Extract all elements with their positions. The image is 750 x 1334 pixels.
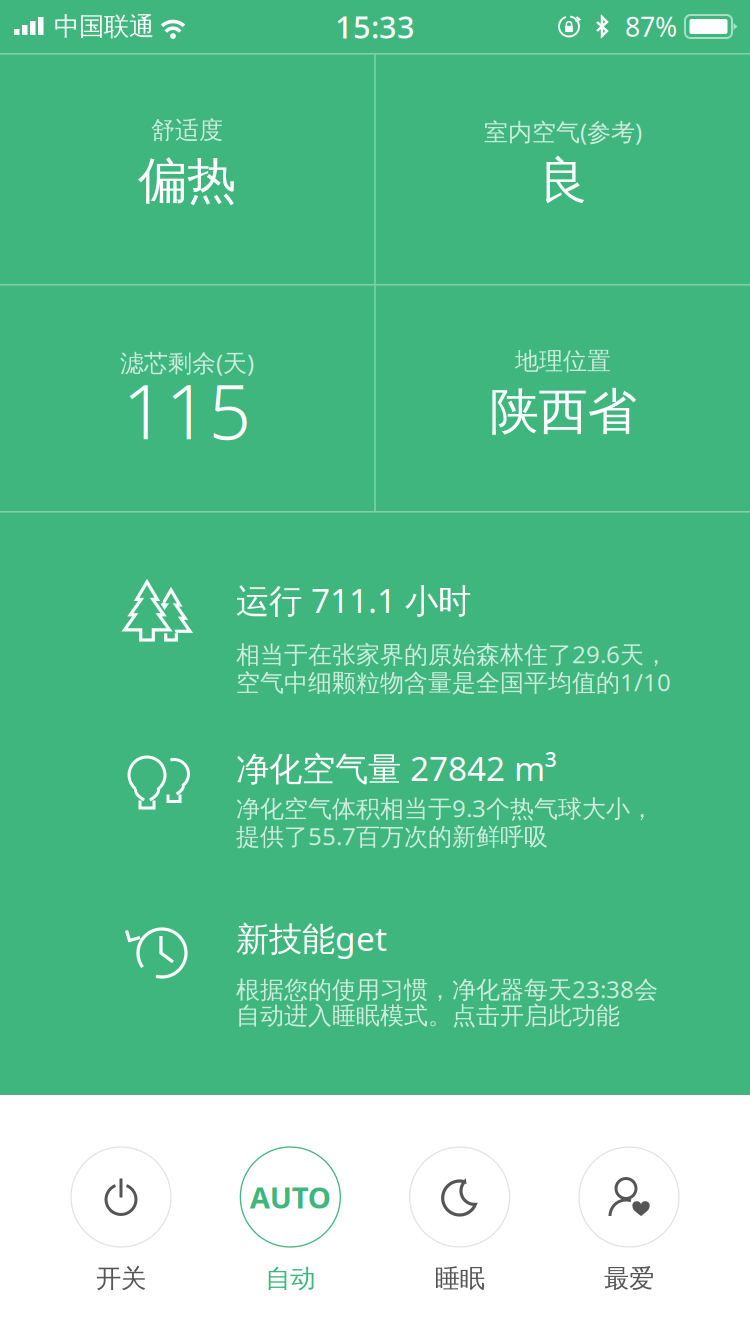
staticText: 运行 711.1 小时 <box>236 578 471 622</box>
button[interactable]: 睡眠 <box>410 1147 510 1294</box>
staticText: 自动进入睡眠模式。点击开启此功能 <box>236 1001 620 1030</box>
staticText: 相当于在张家界的原始森林住了29.6天， <box>236 638 668 670</box>
staticText: 净化空气量 27842 m³ <box>236 746 557 790</box>
staticText: 提供了55.7百万次的新鲜呼吸 <box>236 820 548 852</box>
staticText: 15:33 <box>335 6 415 47</box>
staticText: 净化空气体积相当于9.3个热气球大小， <box>236 792 654 824</box>
staticText: 中国联通 <box>54 11 154 42</box>
staticText: 87% <box>625 9 677 44</box>
staticText: 新技能get <box>236 916 387 960</box>
staticText: AUTO <box>250 1177 331 1216</box>
staticText: 115 <box>123 361 252 460</box>
button[interactable]: AUTO <box>240 1147 340 1294</box>
staticText: 良 <box>538 151 587 211</box>
button[interactable]: 开关 <box>71 1147 171 1294</box>
staticText: 自动 <box>265 1263 315 1294</box>
staticText: 地理位置 <box>515 347 611 376</box>
staticText: 睡眠 <box>435 1263 485 1294</box>
staticText: 最爱 <box>604 1263 654 1294</box>
staticText: 滤芯剩余(天) <box>120 347 254 378</box>
staticText: 舒适度 <box>151 116 223 145</box>
staticText: 陕西省 <box>489 382 636 442</box>
staticText: 空气中细颗粒物含量是全国平均值的1/10 <box>236 666 671 698</box>
staticText: 开关 <box>96 1263 146 1294</box>
button[interactable]: 最爱 <box>579 1147 679 1294</box>
staticText: 室内空气(参考) <box>484 116 642 147</box>
staticText: 偏热 <box>138 151 236 211</box>
staticText: 根据您的使用习惯，净化器每天23:38会 <box>236 973 658 1005</box>
